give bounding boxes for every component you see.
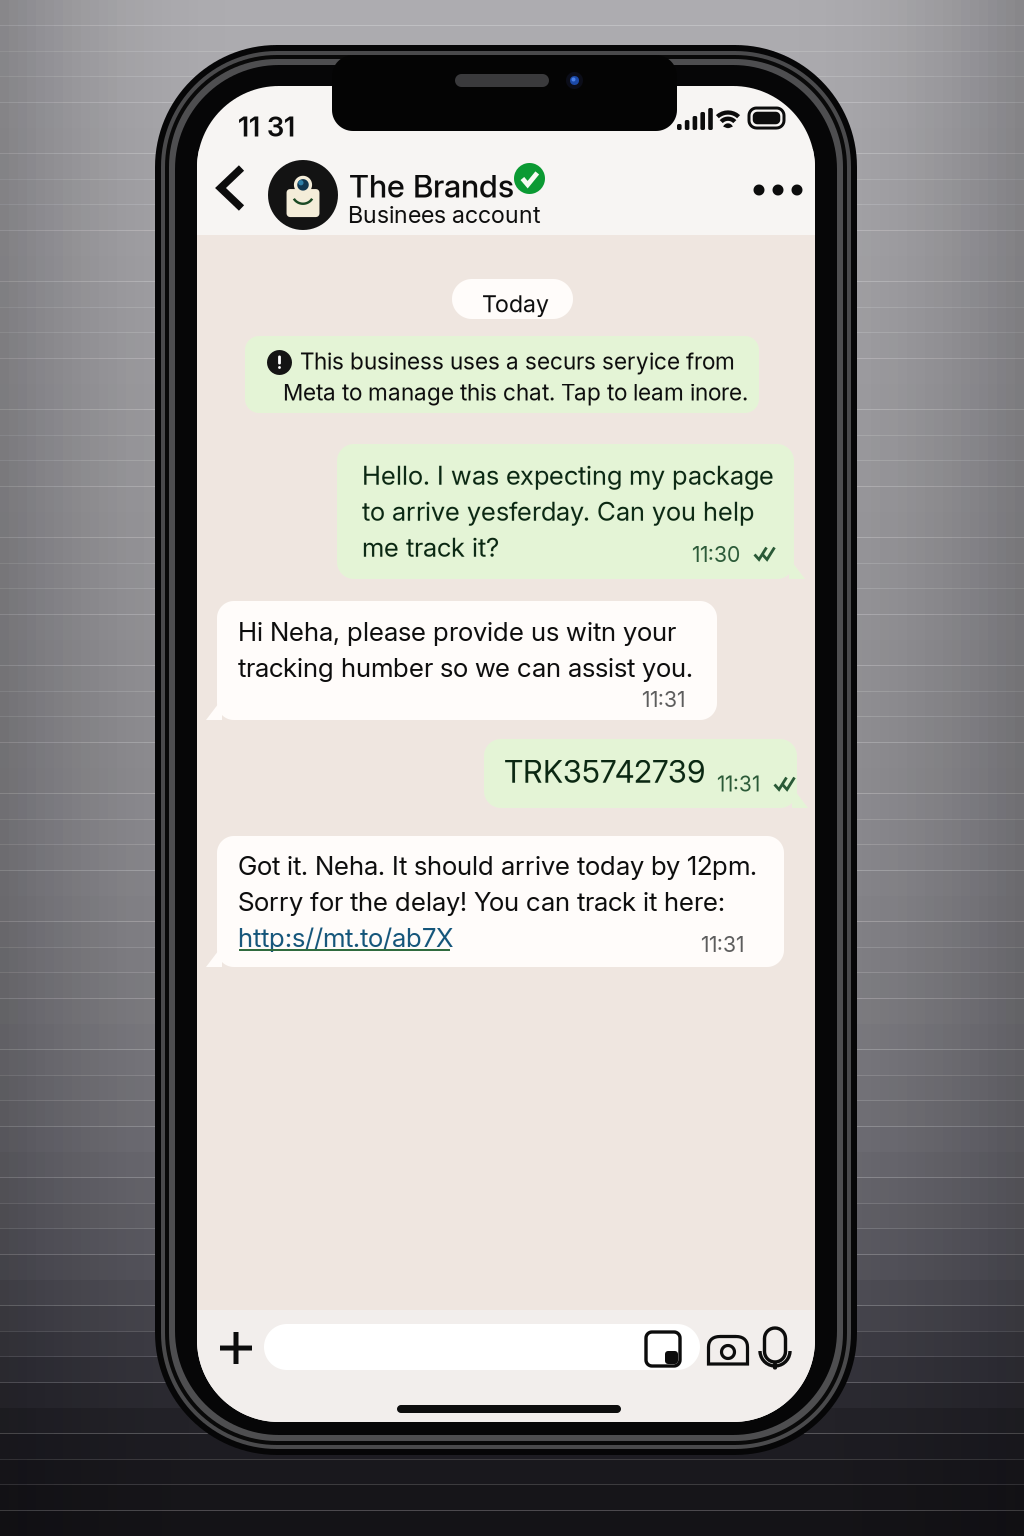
staticText: Today	[482, 290, 549, 318]
staticText: 11 31	[238, 110, 295, 143]
button[interactable]: Camera	[704, 1327, 752, 1373]
button[interactable]: This business uses a securs seryice from	[245, 336, 759, 413]
staticText: Sorry for the delay! You can track it he…	[238, 886, 725, 917]
staticText: TRK35742739	[504, 753, 705, 790]
button[interactable]: More options	[741, 159, 815, 221]
staticText: Got it. Neha. It should arrive today by …	[238, 850, 757, 881]
staticText: Hello. I was expecting my package	[362, 460, 774, 491]
staticText: Businees account	[348, 201, 541, 229]
staticText: 11:31	[701, 931, 744, 957]
button[interactable]: Attach	[207, 1319, 265, 1377]
staticText: This business uses a securs seryice from	[300, 348, 735, 375]
staticText: 11:31	[642, 686, 685, 712]
button[interactable]: http:s//mt.to/ab7X	[238, 920, 464, 956]
staticText: The Brands	[349, 167, 514, 205]
staticText: to arrive yesferday. Can you help	[362, 496, 754, 527]
staticText: 11:30	[692, 541, 740, 567]
staticText: me track it?	[362, 532, 499, 563]
staticText: Meta to manage this chat. Tap to leam in…	[283, 379, 748, 406]
staticText: tracking humber so we can assist you.	[238, 652, 693, 683]
staticText: http:s//mt.to/ab7X	[238, 922, 453, 953]
button[interactable]: Sticker	[640, 1326, 686, 1372]
staticText: 11:31	[717, 771, 760, 796]
button[interactable]: Voice message	[757, 1326, 793, 1370]
staticText: Hi Neha, please provide us witn your	[238, 616, 676, 647]
button[interactable]: Back	[200, 152, 262, 224]
